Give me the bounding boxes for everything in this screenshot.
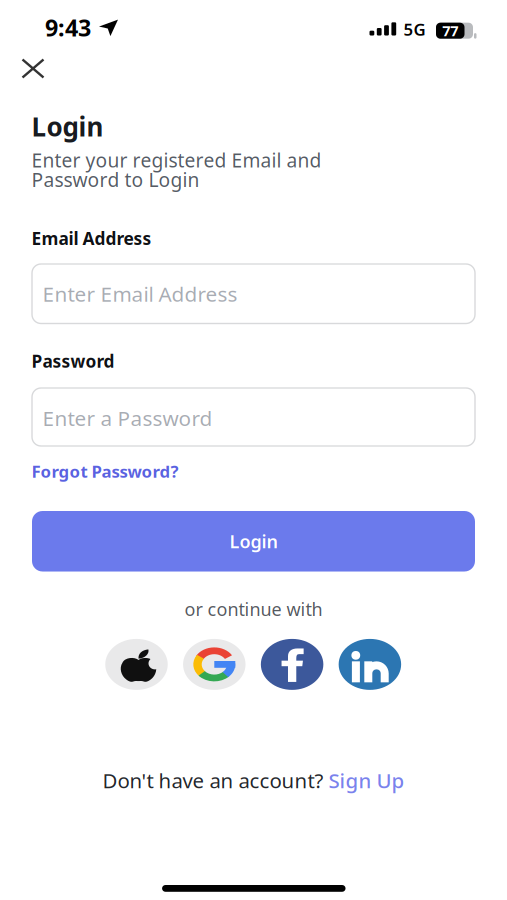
staticText: Enter Email Address [42,280,237,307]
staticText: 5G [403,18,425,40]
staticText: 9:43 [45,12,91,43]
staticText: Sign Up [328,767,404,794]
button[interactable]: Login [32,511,475,571]
staticText: Login [31,109,103,144]
staticText: Password [31,349,114,372]
button[interactable]: Forgot Password? [31,460,178,482]
staticText: 77 [442,21,458,40]
button[interactable] [105,639,168,690]
staticText: Enter a Password [42,404,212,432]
staticText: Enter your registered Email and Password… [31,150,321,189]
staticText: Email Address [31,227,151,250]
button[interactable]: Sign Up [328,767,404,794]
staticText: or continue with [184,597,322,621]
button[interactable] [183,639,246,690]
staticText: Forgot Password? [31,460,178,482]
button[interactable] [261,639,323,690]
staticText: Don't have an account? [102,767,323,794]
staticText: Login [229,529,277,553]
button[interactable] [339,639,401,690]
button[interactable] [22,59,43,77]
